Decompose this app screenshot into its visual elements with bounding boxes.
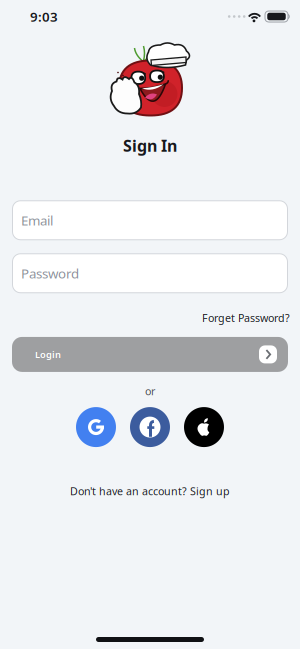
button[interactable]: Sign in with Apple (184, 407, 224, 447)
button[interactable]: Password (0, 253, 300, 293)
staticText: or (145, 384, 155, 398)
staticText: Don't have an account? Sign up (70, 484, 230, 498)
button[interactable]: Sign in with Google (76, 407, 116, 447)
staticText: Login (35, 348, 61, 361)
button[interactable]: Forget Password? (202, 311, 290, 325)
staticText: Password (21, 264, 79, 282)
button[interactable]: Email (0, 200, 300, 240)
staticText: 9:03 (30, 8, 58, 25)
button[interactable]: Don't have an account? Sign up (70, 484, 230, 498)
staticText: Forget Password? (202, 311, 290, 325)
button[interactable]: Login (0, 337, 300, 372)
staticText: Sign In (123, 135, 177, 156)
button[interactable]: Sign in with Facebook (130, 407, 170, 447)
staticText: Email (21, 211, 53, 229)
